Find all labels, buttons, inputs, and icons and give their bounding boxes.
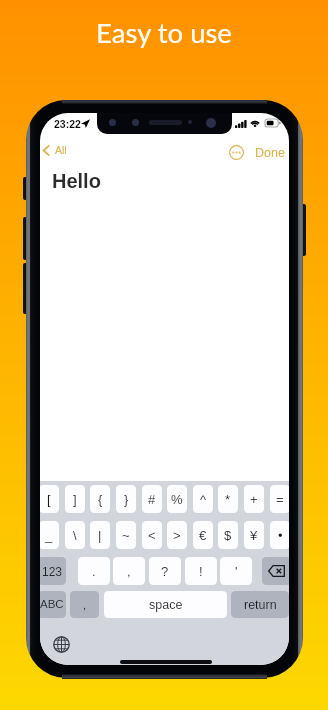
button[interactable]: , [70,591,99,618]
staticText: ! [199,564,203,579]
staticText: ? [161,564,169,579]
button[interactable]: * [218,485,238,513]
button[interactable]: > [167,521,187,549]
button[interactable]: ABC [40,591,66,618]
button[interactable]: ¥ [244,521,264,549]
button[interactable]: , [113,557,145,585]
staticText: Hello [52,170,101,192]
staticText: € [199,528,207,543]
staticText: ABC [40,598,64,611]
button[interactable]: ^ [193,485,213,513]
button[interactable]: ~ [116,521,136,549]
staticText: ' [235,564,238,579]
button[interactable]: + [244,485,264,513]
button[interactable]: ? [149,557,181,585]
button[interactable]: return [231,591,289,618]
staticText: % [171,492,183,507]
staticText: ¥ [250,528,258,543]
staticText: _ [45,528,53,543]
button[interactable]: space [104,591,227,618]
staticText: # [148,492,156,507]
staticText: * [225,492,231,507]
button[interactable]: Done [253,143,287,163]
staticText: $ [224,528,232,543]
button[interactable]: • [270,521,289,549]
staticText: space [149,598,183,612]
staticText: , [127,564,131,579]
staticText: \ [73,528,77,543]
button[interactable]: ' [220,557,252,585]
staticText: | [98,528,102,543]
button[interactable]: \ [65,521,85,549]
staticText: + [250,492,258,507]
staticText: Done [255,146,285,160]
staticText: { [98,492,103,507]
button[interactable]: { [90,485,110,513]
button[interactable]: % [167,485,187,513]
staticText: • [278,528,283,543]
staticText: , [83,599,87,611]
button[interactable]: | [90,521,110,549]
staticText: ^ [200,492,207,507]
button[interactable]: All [41,141,69,159]
staticText: } [124,492,129,507]
button[interactable]: More options [229,145,244,160]
button[interactable]: € [193,521,213,549]
button[interactable]: ! [185,557,217,585]
staticText: Easy to use [0,16,328,49]
staticText: ] [73,492,77,507]
button[interactable]: = [270,485,289,513]
button[interactable]: _ [40,521,59,549]
button[interactable]: 123 [40,557,66,585]
staticText: < [148,528,156,543]
button[interactable]: Change keyboard [53,636,70,653]
staticText: ~ [122,528,130,543]
button[interactable]: # [142,485,162,513]
button[interactable]: < [142,521,162,549]
button[interactable]: . [78,557,110,585]
staticText: = [276,492,284,507]
staticText: 23:22 [54,118,81,130]
staticText: . [92,564,96,579]
button[interactable]: Backspace [262,557,289,585]
button[interactable]: [ [40,485,59,513]
staticText: return [244,598,277,612]
button[interactable]: $ [218,521,238,549]
staticText: 123 [42,565,63,578]
staticText: [ [47,492,51,507]
button[interactable]: ] [65,485,85,513]
staticText: All [55,144,67,156]
button[interactable]: } [116,485,136,513]
staticText: > [173,528,181,543]
